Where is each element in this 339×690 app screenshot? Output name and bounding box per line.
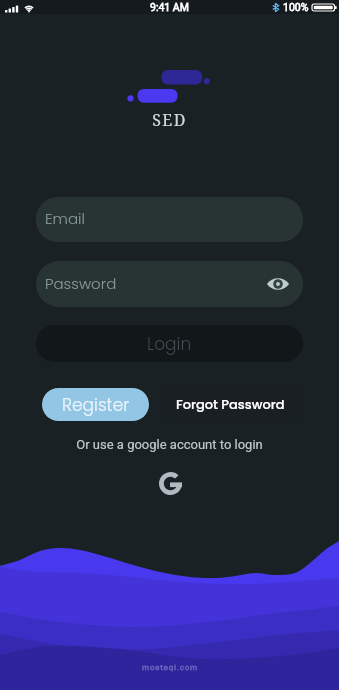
button[interactable]: Sign in with Google — [159, 472, 182, 495]
staticText: Login — [147, 332, 192, 356]
staticText: 100% — [283, 1, 309, 13]
button[interactable]: Login — [36, 325, 303, 362]
staticText: Register — [62, 393, 130, 417]
staticText: Forgot Password — [176, 395, 285, 413]
button[interactable]: Register — [42, 388, 149, 421]
staticText: Email — [45, 208, 85, 229]
staticText: Or use a google account to login — [0, 437, 339, 452]
staticText: Password — [45, 273, 117, 294]
button[interactable]: Password — [36, 261, 303, 307]
staticText: mostaql.com — [142, 663, 198, 672]
staticText: SED — [0, 109, 339, 131]
staticText: 9:41 AM — [150, 1, 189, 13]
button[interactable]: Email — [36, 197, 303, 242]
button[interactable]: Show password — [265, 271, 291, 297]
button[interactable]: Forgot Password — [160, 388, 300, 419]
